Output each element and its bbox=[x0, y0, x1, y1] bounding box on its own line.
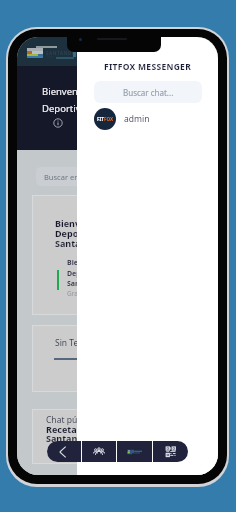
staticText: SANTANDER bbox=[46, 50, 79, 56]
staticText: Bienvenido a bbox=[42, 85, 100, 98]
staticText: Deportivo Santander bbox=[42, 102, 135, 115]
button[interactable]: Scan QR code bbox=[153, 441, 188, 462]
staticText: Chat público bbox=[46, 414, 96, 426]
button[interactable]: FIT bbox=[77, 108, 218, 130]
button[interactable]: Chat público bbox=[33, 410, 206, 463]
staticText: admin bbox=[124, 113, 150, 125]
button[interactable]: Buscar chat... bbox=[94, 81, 202, 103]
button[interactable]: Back bbox=[47, 441, 81, 462]
staticText: Bienvenido a Deportivo Santander bbox=[55, 217, 113, 249]
staticText: Buscar chat... bbox=[123, 87, 174, 98]
button[interactable]: Members bbox=[82, 441, 116, 462]
staticText: Club bbox=[46, 54, 54, 59]
staticText: FOX bbox=[104, 116, 114, 122]
button[interactable]: Buscar en la app bbox=[36, 167, 136, 186]
staticText: Gracias por unirte bbox=[67, 289, 122, 298]
button[interactable]: Bienvenido a Deportivo Santander bbox=[33, 196, 206, 314]
button[interactable]: Chat preview bbox=[117, 441, 152, 462]
staticText: FIT bbox=[97, 116, 104, 122]
staticText: Recetas Santander bbox=[46, 423, 93, 445]
staticText: Bienvenido a Deportivo Santander bbox=[67, 258, 113, 288]
button[interactable]: Sin Temporada activa bbox=[33, 326, 206, 391]
staticText: Sin Temporada activa bbox=[55, 337, 141, 349]
staticText: FITFOX MESSENGER bbox=[77, 61, 218, 73]
staticText: Buscar en la app bbox=[44, 172, 103, 182]
